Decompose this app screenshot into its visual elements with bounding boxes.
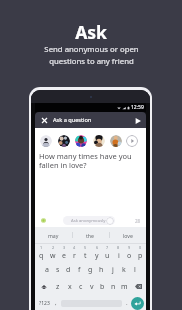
button[interactable]: 7 [102,244,113,261]
button[interactable]: s [52,261,63,278]
staticText: 4 [73,245,76,250]
staticText: ?123 [39,300,50,307]
button[interactable]: Enter [131,297,144,310]
button[interactable]: Friend [110,135,122,147]
button[interactable]: 4 [69,244,80,261]
staticText: 28 [135,218,141,224]
button[interactable]: j [107,261,118,278]
button[interactable]: b [97,278,108,295]
staticText: o [127,251,132,261]
staticText: u [105,251,110,261]
button[interactable]: m [119,278,130,295]
staticText: 5 [84,245,87,250]
button[interactable]: Ask anonymously [63,216,115,225]
staticText: Ask a question [53,116,92,124]
staticText: love [123,232,133,239]
button[interactable]: . [123,295,131,310]
button[interactable]: 9 [124,244,135,261]
staticText: d [66,265,71,275]
staticText: w [50,251,56,261]
button[interactable]: a [41,261,52,278]
button[interactable]: v [86,278,97,295]
button[interactable]: love [109,227,146,243]
button[interactable]: g [85,261,96,278]
staticText: c [79,282,83,292]
staticText: 6 [96,245,99,250]
staticText: x [68,282,72,292]
staticText: j [112,265,114,275]
staticText: g [88,265,93,275]
staticText: h [99,265,104,275]
button[interactable]: l [129,261,140,278]
staticText: 1 [40,245,43,250]
button[interactable]: d [63,261,74,278]
button[interactable]: More friends [126,135,138,147]
button[interactable]: Friend [40,135,52,147]
button[interactable]: x [64,278,75,295]
staticText: i [118,251,120,261]
button[interactable]: Send [132,115,143,126]
button[interactable]: 3 [58,244,69,261]
staticText: 7 [106,245,109,250]
button[interactable]: h [96,261,107,278]
staticText: l [134,265,136,275]
button[interactable]: c [75,278,86,295]
staticText: 8 [117,245,120,250]
staticText: r [73,251,76,261]
button[interactable]: may [35,227,72,243]
staticText: y [95,251,99,261]
button[interactable]: f [74,261,85,278]
staticText: 2 [52,245,55,250]
button[interactable]: k [118,261,129,278]
staticText: may [48,232,59,239]
staticText: Ask [75,20,107,44]
staticText: How many times have you fallen in love? [39,151,132,171]
button[interactable]: 6 [91,244,102,261]
button[interactable]: 8 [113,244,124,261]
staticText: , [55,299,57,307]
staticText: k [122,265,126,275]
staticText: f [78,265,81,275]
button[interactable]: z [52,278,64,295]
button[interactable]: 0 [135,244,146,261]
button[interactable]: 2 [47,244,58,261]
staticText: 12:59 [131,104,144,111]
staticText: e [62,251,66,261]
button[interactable]: Shift [35,278,52,295]
staticText: . [126,299,128,307]
staticText: 3 [63,245,66,250]
staticText: z [56,282,60,292]
button[interactable]: , [52,295,60,310]
button[interactable]: the [72,227,109,243]
staticText: v [90,282,94,292]
button[interactable]: ?123 [37,295,52,310]
staticText: t [84,251,87,261]
staticText: Send anonymous or open questions to any … [44,44,139,66]
staticText: p [138,251,143,261]
button[interactable]: Friend [58,135,70,147]
button[interactable]: 5 [80,244,91,261]
staticText: the [86,232,95,239]
button[interactable]: Friend [75,135,87,147]
staticText: a [45,265,49,275]
staticText: b [100,282,105,292]
staticText: 0 [139,245,142,250]
button[interactable]: Emoji [41,218,46,223]
staticText: q [39,251,44,261]
staticText: s [56,265,60,275]
staticText: Ask anonymously [71,218,106,224]
button[interactable]: Friend [93,135,105,147]
staticText: n [111,282,116,292]
button[interactable]: Close [39,115,49,125]
staticText: m [121,282,128,292]
button[interactable]: n [108,278,119,295]
button[interactable]: Backspace [130,278,146,295]
button[interactable]: 1 [35,244,47,261]
staticText: 9 [128,245,131,250]
